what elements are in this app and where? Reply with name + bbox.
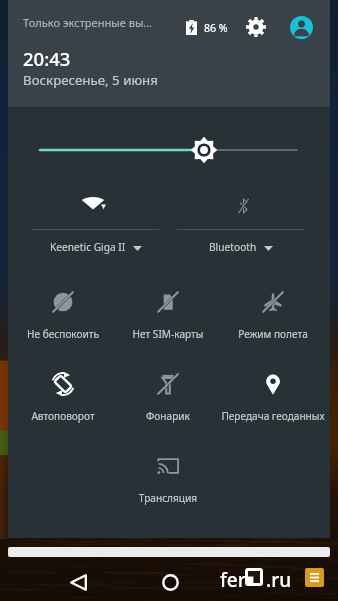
staticText: Передача геоданных bbox=[220, 409, 326, 423]
button[interactable]: Keenetic Giga II bbox=[22, 192, 169, 262]
staticText: Трансляция bbox=[115, 491, 221, 505]
staticText: Keenetic Giga II bbox=[50, 240, 126, 254]
button[interactable]: Home bbox=[150, 562, 190, 601]
button[interactable]: Трансляция bbox=[115, 454, 221, 516]
staticText: Воскресенье, 5 июня bbox=[23, 71, 158, 89]
button[interactable]: Автоповорот bbox=[10, 372, 116, 434]
staticText: Режим полета bbox=[220, 327, 326, 341]
button[interactable]: Bluetooth bbox=[167, 192, 314, 262]
staticText: fer bbox=[220, 567, 246, 593]
button[interactable]: Режим полета bbox=[220, 290, 326, 352]
button[interactable]: User profile bbox=[283, 9, 319, 45]
staticText: Нет SIM-карты bbox=[115, 327, 221, 341]
button[interactable]: Передача геоданных bbox=[220, 372, 326, 434]
staticText: 86 % bbox=[204, 21, 228, 35]
staticText: Bluetooth bbox=[209, 240, 257, 254]
button[interactable]: Нет SIM-карты bbox=[115, 290, 221, 352]
button[interactable]: Settings bbox=[238, 9, 274, 45]
staticText: 20:43 bbox=[23, 46, 71, 71]
staticText: Только экстренные вы… bbox=[23, 15, 153, 30]
staticText: .ru bbox=[266, 567, 292, 593]
button[interactable]: Не беспокоить bbox=[10, 290, 116, 352]
staticText: Не беспокоить bbox=[10, 327, 116, 341]
button[interactable]: Back bbox=[58, 562, 98, 601]
button[interactable]: Фонарик bbox=[115, 372, 221, 434]
staticText: Фонарик bbox=[115, 409, 221, 423]
staticText: Автоповорот bbox=[10, 409, 116, 423]
button[interactable]: Brightness bbox=[8, 132, 330, 168]
